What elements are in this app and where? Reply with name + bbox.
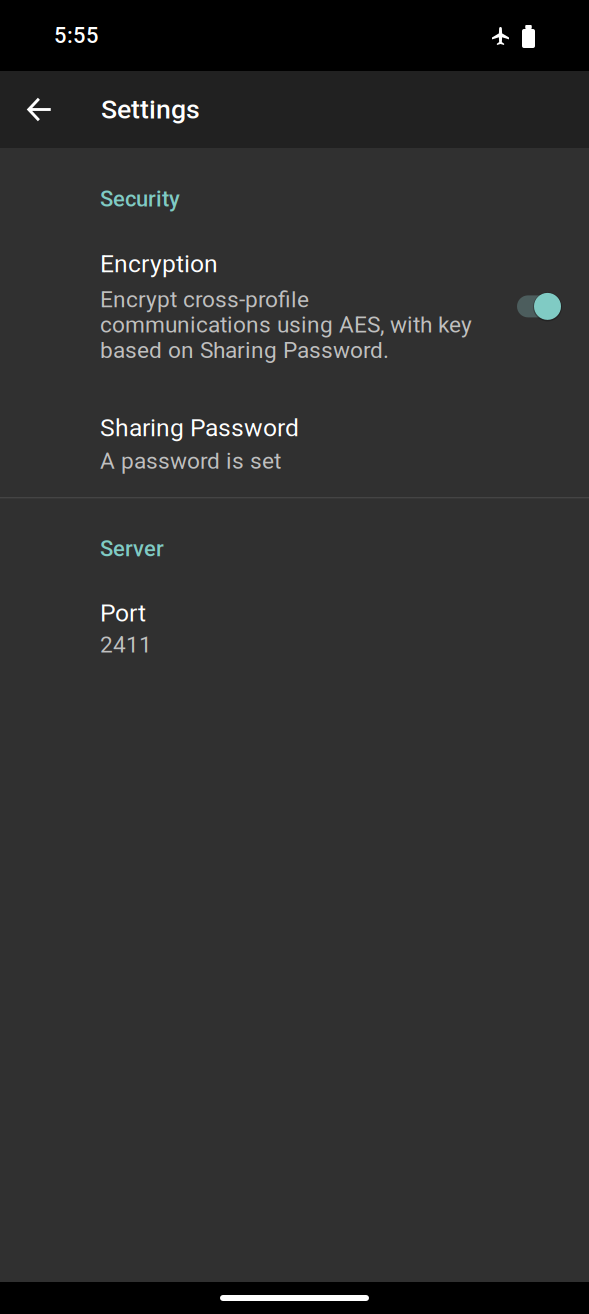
staticText: Encrypt cross-profile communications usi… [100,286,472,363]
staticText: Server [100,536,164,562]
button[interactable]: Encryption [0,212,589,397]
button[interactable]: Encryption, on [517,291,562,321]
staticText: Security [100,186,180,212]
staticText: Settings [101,94,200,125]
staticText: A password is set [100,448,281,474]
button[interactable]: Back [8,71,70,148]
staticText: 2411 [100,631,152,658]
staticText: Encryption [100,249,218,278]
staticText: Port [100,598,146,627]
staticText: 5:55 [54,23,99,48]
button[interactable]: Sharing Password [0,397,589,497]
button[interactable]: Port [0,561,589,684]
staticText: Sharing Password [100,413,299,442]
